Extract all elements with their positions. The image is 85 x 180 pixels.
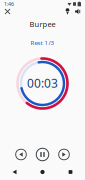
button[interactable]: Keep screen on <box>61 5 74 18</box>
button[interactable]: Sound <box>71 5 84 18</box>
button[interactable]: Pause <box>33 145 52 164</box>
staticText: 00:03 <box>27 75 58 91</box>
staticText: Burpee <box>29 19 55 29</box>
button[interactable]: Previous exercise <box>12 146 29 163</box>
button[interactable]: Back <box>0 165 28 179</box>
staticText: 1:46 <box>4 0 14 8</box>
button[interactable]: Recent apps <box>56 165 84 179</box>
button[interactable]: Next exercise <box>55 146 72 163</box>
staticText: Rest 1/3 <box>30 38 54 47</box>
button[interactable]: Home <box>28 165 56 179</box>
button[interactable]: Close <box>0 4 15 19</box>
